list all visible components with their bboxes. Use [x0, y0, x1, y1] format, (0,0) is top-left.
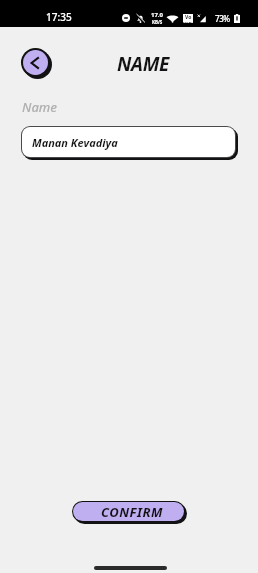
staticText: 73%: [215, 13, 230, 24]
staticText: NAME: [14, 51, 258, 77]
staticText: 17:35: [46, 10, 72, 24]
staticText: KB/S: [152, 19, 163, 25]
staticText: Manan Kevadiya: [32, 135, 118, 150]
staticText: Name: [22, 98, 58, 116]
button[interactable]: Back: [23, 50, 48, 75]
button[interactable]: Manan Kevadiya: [22, 127, 235, 157]
staticText: WiFi: [183, 21, 193, 23]
staticText: Vo: [185, 14, 192, 21]
staticText: 17.0: [151, 11, 163, 19]
staticText: CONFIRM: [101, 503, 163, 521]
button[interactable]: CONFIRM: [73, 502, 184, 521]
